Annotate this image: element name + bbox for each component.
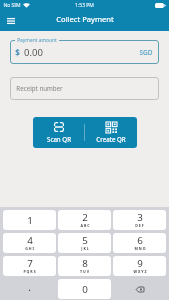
other: Backspace xyxy=(136,287,144,292)
staticText: No SIM xyxy=(3,2,21,9)
staticText: SGD xyxy=(139,48,153,57)
button[interactable]: 7 xyxy=(3,256,56,276)
staticText: 0 xyxy=(82,283,88,296)
button[interactable]: 4 xyxy=(3,233,56,253)
button[interactable]: 8 xyxy=(58,256,111,276)
button[interactable]: 2 xyxy=(58,210,111,230)
button[interactable]: Create QR xyxy=(85,117,137,148)
staticText: 2 xyxy=(82,211,88,224)
button[interactable]: $ xyxy=(10,40,159,64)
staticText: . xyxy=(28,280,31,294)
staticText: $ xyxy=(15,47,20,58)
button[interactable]: 6 xyxy=(113,233,166,253)
staticText: 1:53 PM xyxy=(75,2,94,9)
button[interactable]: . xyxy=(3,279,56,299)
staticText: D E F xyxy=(135,223,144,228)
staticText: Receipt number xyxy=(16,84,63,92)
staticText: G H I xyxy=(25,246,34,251)
button[interactable]: 9 xyxy=(113,256,166,276)
staticText: 3 xyxy=(137,211,143,224)
button[interactable]: 1 xyxy=(3,210,56,230)
staticText: 0.00 xyxy=(24,46,43,59)
button[interactable]: 0 xyxy=(58,279,111,299)
staticText: A B C xyxy=(80,223,90,228)
button[interactable]: Receipt number xyxy=(10,77,159,100)
staticText: Scan QR xyxy=(47,135,71,143)
staticText: Payment amount xyxy=(17,37,57,44)
staticText: 4 xyxy=(27,234,33,247)
button[interactable]: 3 xyxy=(113,210,166,230)
button[interactable]: Backspace xyxy=(113,279,166,299)
staticText: 9 xyxy=(137,257,143,270)
staticText: J K L xyxy=(81,246,89,251)
staticText: M N O xyxy=(134,246,146,251)
button[interactable]: Open navigation menu xyxy=(3,13,19,29)
staticText: Collect Payment xyxy=(56,14,114,24)
staticText: W X Y Z xyxy=(133,269,147,274)
staticText: 8 xyxy=(82,257,88,270)
button[interactable]: 5 xyxy=(58,233,111,253)
staticText: P Q R S xyxy=(23,269,36,274)
staticText: 1 xyxy=(27,214,33,227)
staticText: 7 xyxy=(27,257,33,270)
button[interactable]: Scan QR xyxy=(33,117,84,148)
staticText: 6 xyxy=(137,234,143,247)
staticText: T U V xyxy=(80,269,89,274)
staticText: Create QR xyxy=(96,135,126,143)
staticText: 5 xyxy=(82,234,88,247)
